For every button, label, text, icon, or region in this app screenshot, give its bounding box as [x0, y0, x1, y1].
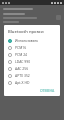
staticText: ОТМЕНА [40, 88, 55, 93]
staticText: PCM 24 [15, 52, 28, 57]
staticText: APTX 352 [15, 73, 30, 78]
staticText: Apt-X HD [15, 80, 30, 85]
staticText: AAC 256 [15, 66, 29, 71]
button[interactable]: Использовать системный [8, 37, 57, 44]
button[interactable]: Apt-X HD [8, 79, 57, 86]
staticText: PCM16 [15, 45, 27, 50]
button[interactable]: ОТМЕНА [38, 87, 57, 94]
button[interactable]: AAC 256 [8, 65, 57, 72]
staticText: Использовать системный [15, 38, 57, 43]
staticText: LDAC 990 [15, 59, 31, 64]
staticText: Bluetooth прокси [8, 29, 44, 35]
button[interactable]: PCM 24 [8, 51, 57, 58]
button[interactable]: Info [0, 12, 64, 23]
button[interactable]: LDAC 990 [8, 58, 57, 65]
button[interactable]: APTX 352 [8, 72, 57, 79]
button[interactable]: PCM16 [8, 44, 57, 51]
